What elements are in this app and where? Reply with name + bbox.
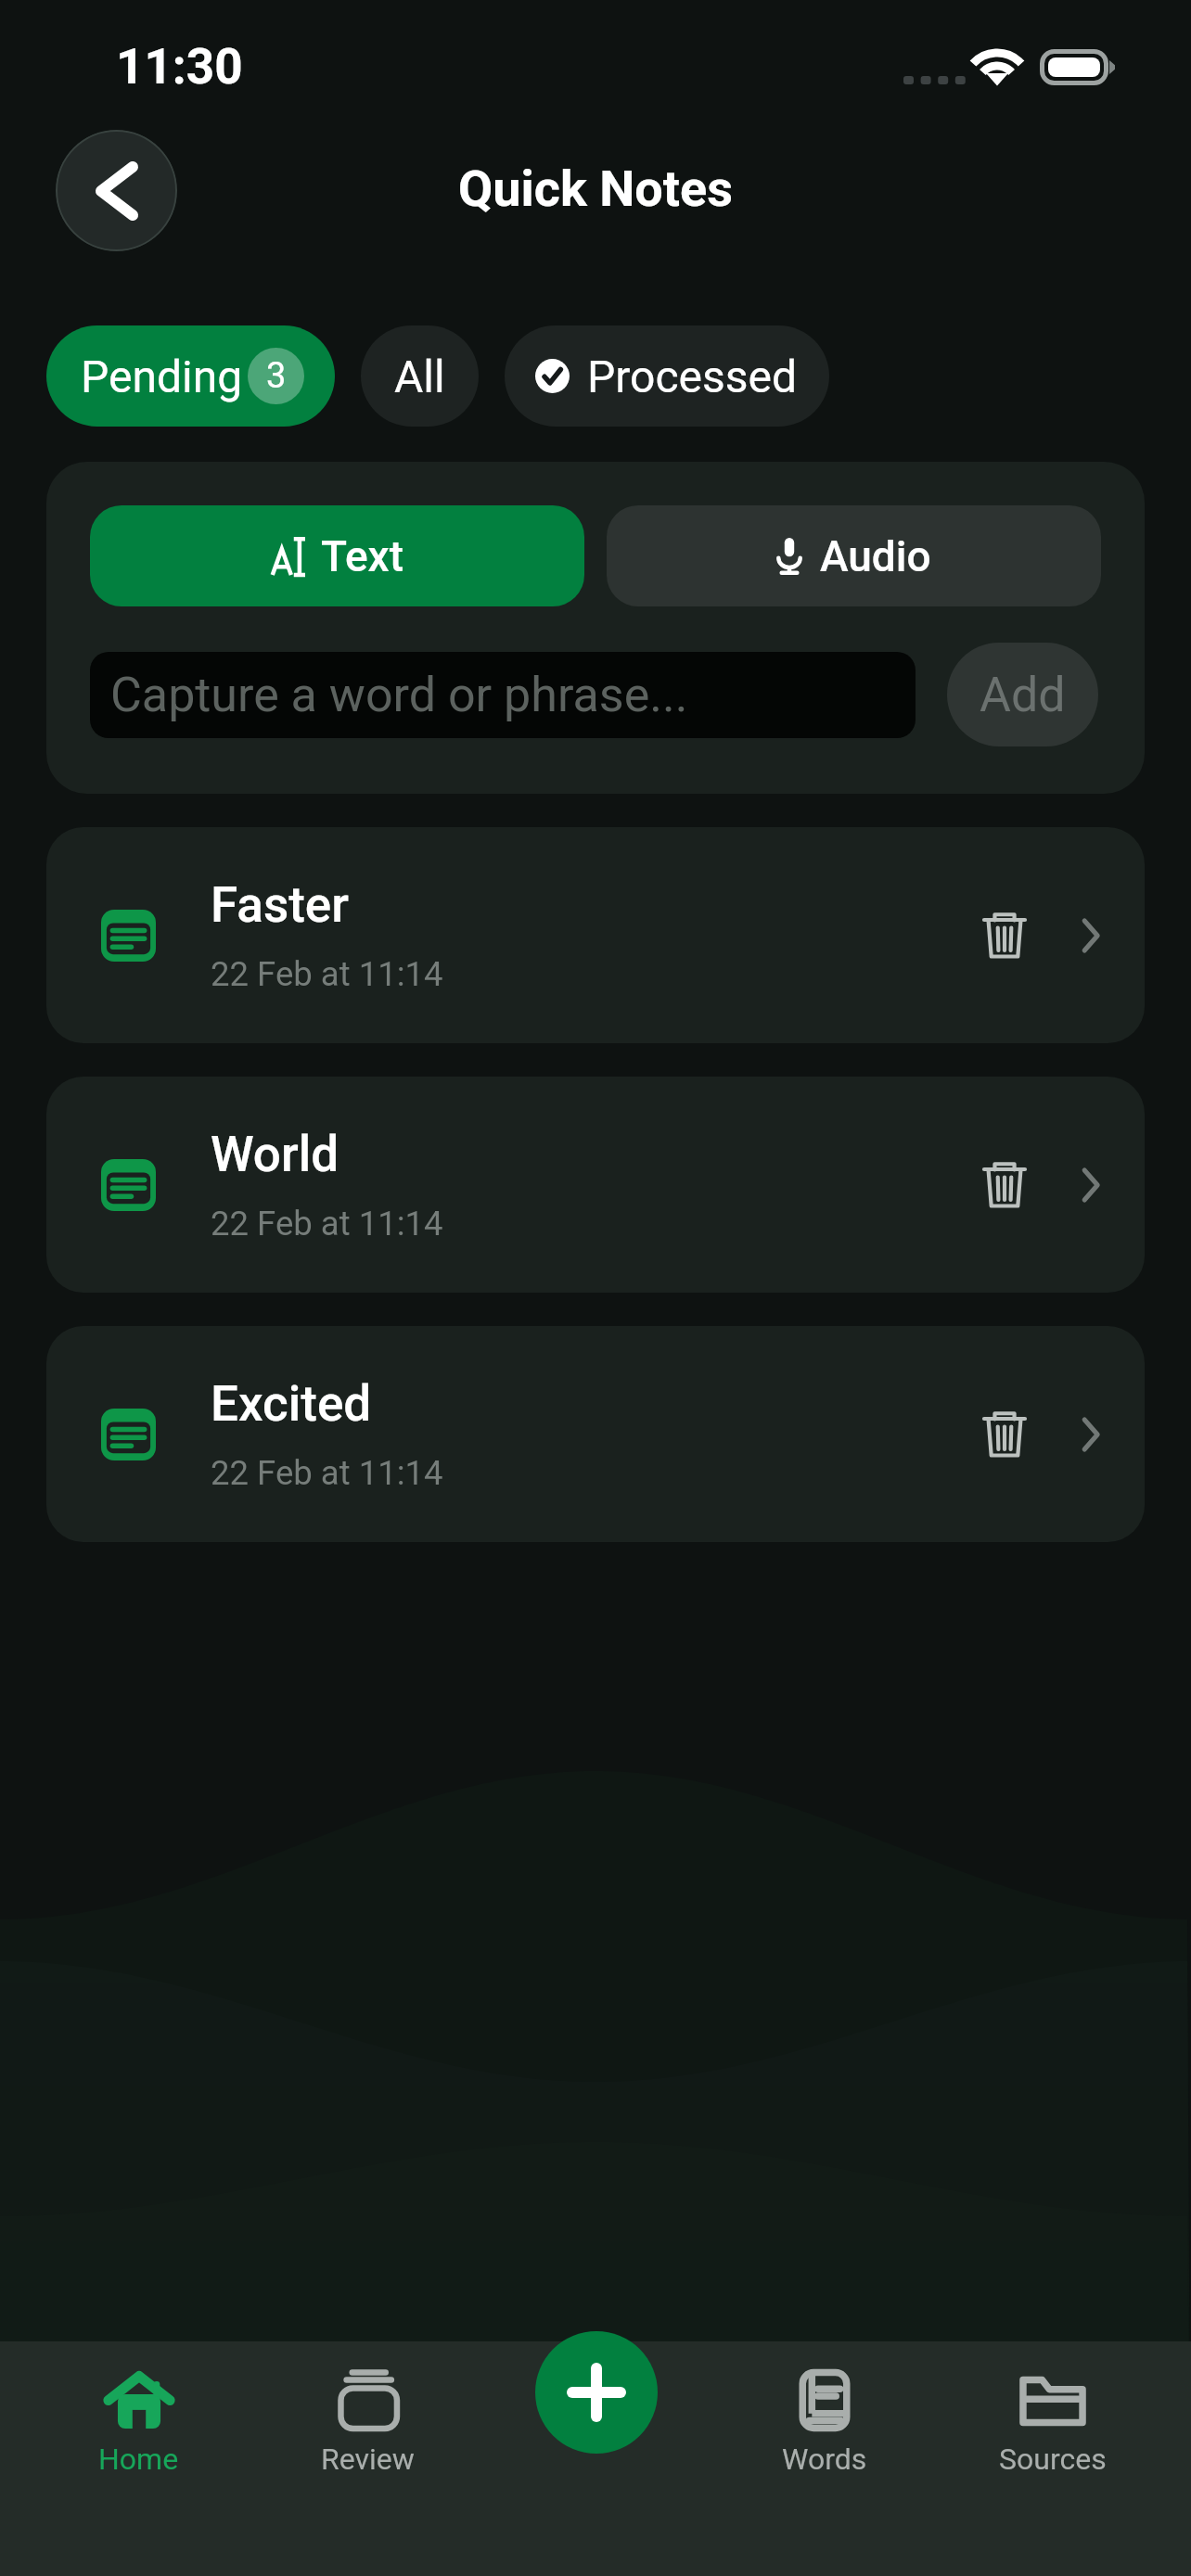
staticText: 22 Feb at 11:14 xyxy=(211,1204,443,1243)
staticText: Add xyxy=(980,667,1066,723)
button[interactable]: Excited xyxy=(46,1326,1145,1542)
staticText: Words xyxy=(782,2442,867,2477)
button[interactable]: Open note xyxy=(1062,907,1120,964)
button[interactable]: Faster xyxy=(46,827,1145,1043)
button[interactable]: Capture a word or phrase... xyxy=(90,652,916,738)
button[interactable]: Open note xyxy=(1062,1156,1120,1214)
staticText: 3 xyxy=(266,355,287,397)
button[interactable]: Delete xyxy=(958,889,1051,982)
button[interactable]: Add new note xyxy=(535,2331,658,2454)
button[interactable]: Text xyxy=(90,505,584,606)
button[interactable]: Pending xyxy=(46,325,335,427)
button[interactable]: All xyxy=(361,325,479,427)
staticText: Quick Notes xyxy=(458,159,733,218)
staticText: Capture a word or phrase... xyxy=(110,667,688,723)
staticText: Sources xyxy=(999,2442,1107,2477)
staticText: 11:30 xyxy=(116,38,243,96)
button[interactable]: Audio xyxy=(607,505,1101,606)
staticText: Audio xyxy=(820,531,931,581)
staticText: Processed xyxy=(587,351,798,402)
button[interactable]: Words xyxy=(711,2370,939,2506)
button[interactable]: Back xyxy=(56,130,177,251)
button[interactable]: Delete xyxy=(958,1388,1051,1481)
button[interactable]: Open note xyxy=(1062,1406,1120,1463)
button[interactable]: Delete xyxy=(958,1139,1051,1231)
staticText: 22 Feb at 11:14 xyxy=(211,1453,443,1493)
staticText: Pending xyxy=(81,351,243,402)
staticText: Faster xyxy=(211,876,349,934)
button[interactable]: World xyxy=(46,1077,1145,1293)
staticText: Text xyxy=(321,531,403,581)
button[interactable]: Review xyxy=(253,2370,482,2506)
staticText: All xyxy=(394,351,445,402)
button[interactable]: Sources xyxy=(939,2370,1167,2506)
staticText: World xyxy=(211,1126,339,1183)
button[interactable]: Home xyxy=(24,2370,253,2506)
staticText: Home xyxy=(98,2442,179,2477)
button[interactable]: Add xyxy=(947,643,1098,746)
staticText: 22 Feb at 11:14 xyxy=(211,954,443,994)
button[interactable]: Processed xyxy=(505,325,829,427)
staticText: Excited xyxy=(211,1375,372,1433)
staticText: Review xyxy=(321,2442,415,2477)
